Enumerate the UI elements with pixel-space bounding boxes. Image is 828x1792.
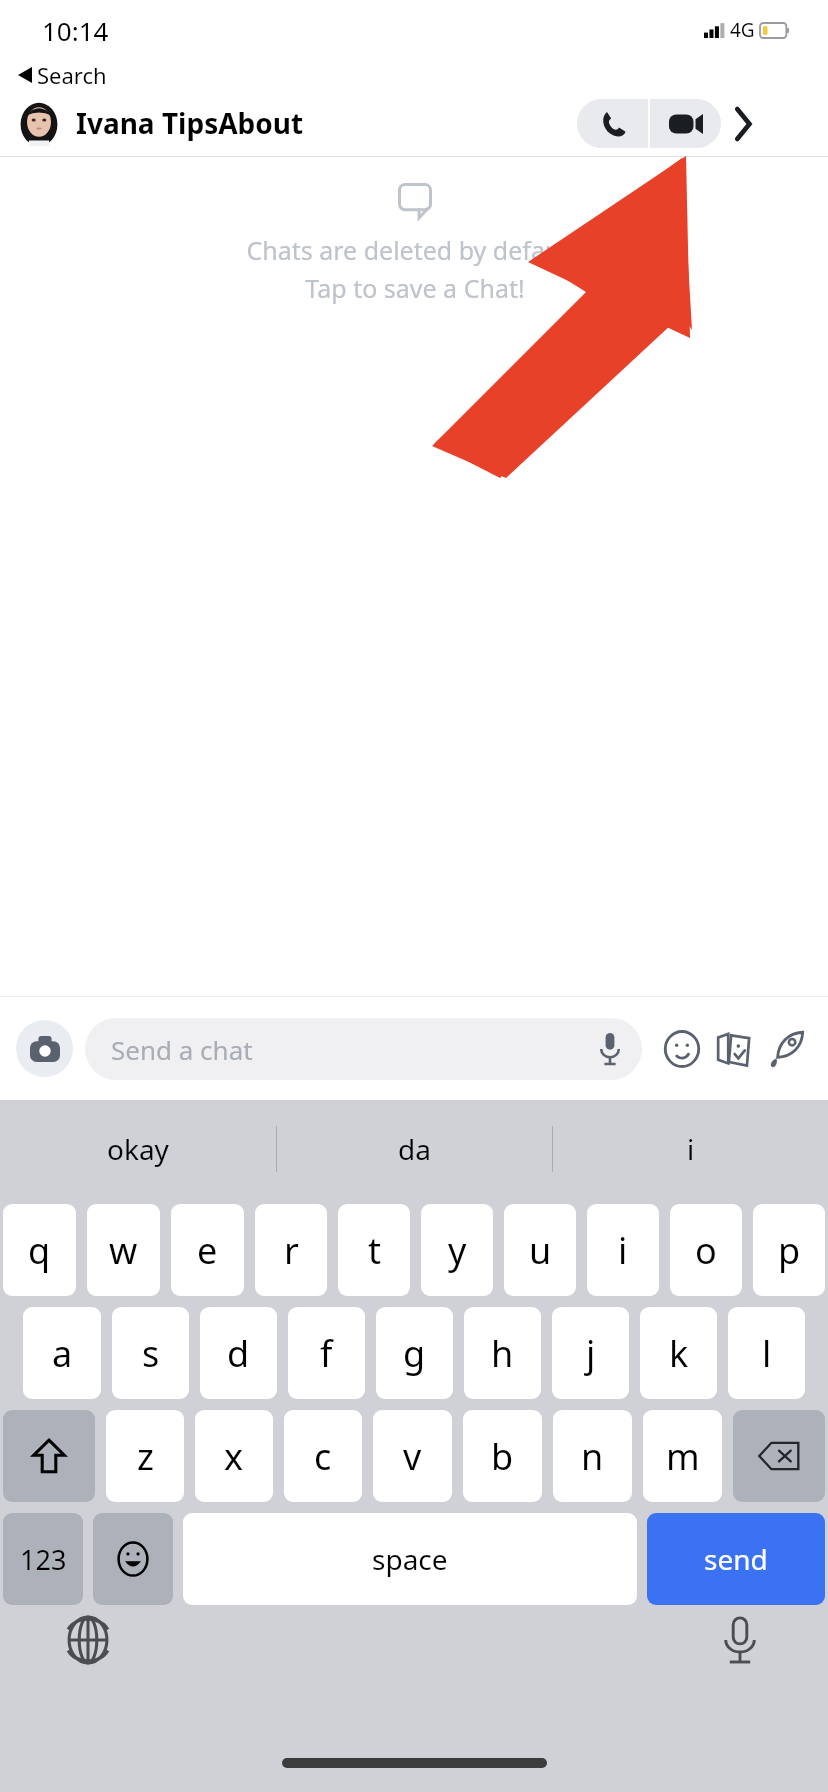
- staticText: Ivana TipsAbout: [76, 104, 304, 142]
- button[interactable]: j: [552, 1307, 629, 1399]
- staticText: m: [666, 1432, 700, 1481]
- staticText: e: [197, 1226, 218, 1275]
- button[interactable]: da: [277, 1100, 552, 1198]
- staticText: b: [491, 1432, 514, 1481]
- button[interactable]: s: [112, 1307, 189, 1399]
- staticText: s: [142, 1329, 160, 1378]
- button[interactable]: send: [647, 1513, 825, 1605]
- staticText: 4G: [730, 17, 755, 43]
- button[interactable]: c: [284, 1410, 362, 1502]
- staticText: Chats are deleted by default.: [246, 233, 583, 267]
- button[interactable]: o: [670, 1204, 742, 1296]
- staticText: d: [227, 1329, 250, 1378]
- button[interactable]: h: [464, 1307, 541, 1399]
- button[interactable]: Backspace: [733, 1410, 825, 1502]
- staticText: k: [669, 1329, 689, 1378]
- button[interactable]: Shift: [3, 1410, 95, 1502]
- button[interactable]: e: [171, 1204, 244, 1296]
- staticText: v: [403, 1432, 422, 1481]
- staticText: x: [224, 1432, 244, 1481]
- staticText: p: [778, 1226, 801, 1275]
- staticText: n: [581, 1432, 604, 1481]
- staticText: okay: [107, 1130, 169, 1168]
- staticText: Send a chat: [111, 1032, 600, 1067]
- button[interactable]: y: [421, 1204, 493, 1296]
- staticText: i: [687, 1130, 695, 1168]
- button[interactable]: okay: [0, 1100, 276, 1198]
- button[interactable]: x: [195, 1410, 273, 1502]
- button[interactable]: Send a chat: [85, 1018, 642, 1080]
- staticText: u: [529, 1226, 552, 1275]
- button[interactable]: q: [3, 1204, 76, 1296]
- staticText: y: [448, 1226, 467, 1275]
- button[interactable]: v: [373, 1410, 452, 1502]
- staticText: z: [137, 1432, 154, 1481]
- button[interactable]: Stickers: [656, 1023, 708, 1075]
- staticText: da: [398, 1130, 431, 1168]
- staticText: space: [372, 1540, 448, 1578]
- staticText: o: [695, 1226, 717, 1275]
- staticText: c: [314, 1432, 332, 1481]
- staticText: Tap to save a Chat!: [305, 271, 525, 305]
- button[interactable]: Video call: [650, 99, 721, 148]
- button[interactable]: i: [587, 1204, 659, 1296]
- button[interactable]: l: [728, 1307, 805, 1399]
- button[interactable]: Dictation: [708, 1611, 772, 1669]
- staticText: 123: [20, 1541, 67, 1578]
- button[interactable]: Change keyboard: [56, 1611, 120, 1669]
- button[interactable]: Games: [708, 1023, 760, 1075]
- button[interactable]: Camera: [16, 1020, 73, 1077]
- button[interactable]: p: [753, 1204, 825, 1296]
- staticText: i: [618, 1226, 628, 1275]
- staticText: Search: [37, 60, 107, 90]
- button[interactable]: Voice call: [577, 99, 648, 148]
- staticText: g: [403, 1329, 426, 1378]
- other: Voice message: [600, 1033, 620, 1065]
- button[interactable]: a: [23, 1307, 101, 1399]
- button[interactable]: space: [183, 1513, 637, 1605]
- button[interactable]: Search: [18, 60, 107, 90]
- staticText: l: [762, 1329, 772, 1378]
- button[interactable]: Emoji: [93, 1513, 173, 1605]
- button[interactable]: r: [255, 1204, 327, 1296]
- staticText: f: [320, 1329, 333, 1378]
- button[interactable]: m: [643, 1410, 722, 1502]
- button[interactable]: u: [504, 1204, 576, 1296]
- staticText: a: [52, 1329, 73, 1378]
- staticText: r: [284, 1226, 299, 1275]
- staticText: h: [491, 1329, 514, 1378]
- button[interactable]: Rocket: [760, 1023, 812, 1075]
- button[interactable]: More options: [721, 99, 765, 148]
- staticText: 10:14: [42, 13, 109, 48]
- staticText: t: [368, 1226, 381, 1275]
- staticText: w: [109, 1226, 138, 1275]
- staticText: j: [586, 1329, 596, 1378]
- button[interactable]: z: [106, 1410, 184, 1502]
- button[interactable]: w: [87, 1204, 160, 1296]
- button[interactable]: f: [288, 1307, 365, 1399]
- button[interactable]: b: [463, 1410, 542, 1502]
- button[interactable]: k: [640, 1307, 717, 1399]
- staticText: send: [704, 1540, 768, 1578]
- button[interactable]: t: [338, 1204, 410, 1296]
- button[interactable]: i: [553, 1100, 828, 1198]
- staticText: q: [28, 1226, 51, 1275]
- button[interactable]: g: [376, 1307, 453, 1399]
- button[interactable]: 123: [3, 1513, 83, 1605]
- button[interactable]: d: [200, 1307, 277, 1399]
- button[interactable]: n: [553, 1410, 632, 1502]
